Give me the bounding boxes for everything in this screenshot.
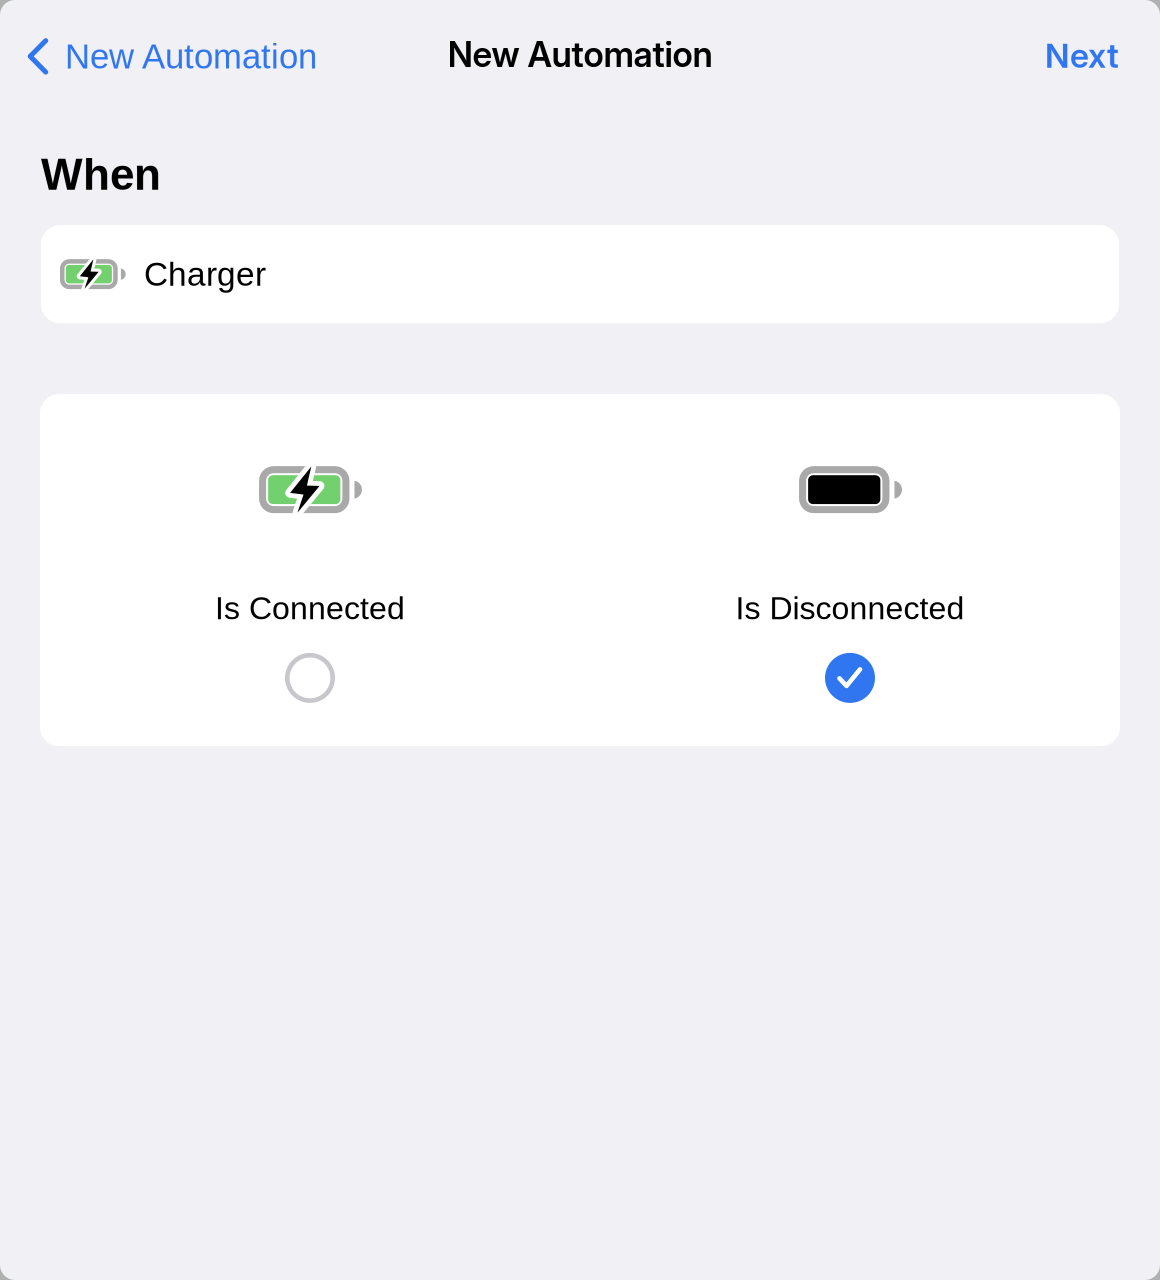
button[interactable]: Is Connected [40,394,580,746]
button[interactable]: Next [1027,22,1160,91]
staticText: When [41,150,161,199]
staticText: Is Disconnected [735,590,964,626]
staticText: Charger [144,255,266,293]
staticText: New Automation [65,37,317,76]
staticText: New Automation [447,33,712,75]
button[interactable]: Is Disconnected [580,394,1120,746]
staticText: Next [1045,35,1119,76]
staticText: Is Connected [215,590,405,626]
button[interactable]: Charger [41,225,1119,323]
button[interactable]: New Automation [0,23,327,90]
